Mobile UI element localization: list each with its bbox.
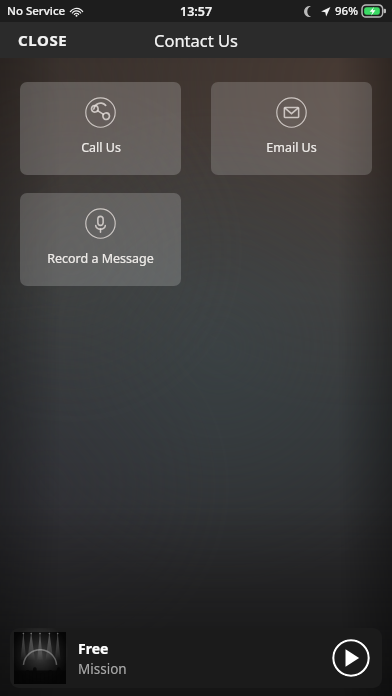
button[interactable]: Play [332,639,370,677]
button[interactable]: Email Us [211,82,372,175]
staticText: Free [78,639,109,658]
staticText: Mission [78,660,127,678]
staticText: Email Us [266,139,317,156]
staticText: No Service [7,3,66,19]
button[interactable]: Call Us [20,82,181,175]
button[interactable]: Free [10,628,382,688]
staticText: Record a Message [47,250,154,267]
staticText: Contact Us [154,29,238,51]
staticText: Call Us [81,139,121,156]
staticText: 96% [335,3,358,19]
button[interactable]: CLOSE [0,24,86,56]
staticText: 13:57 [180,3,213,20]
button[interactable]: Record a Message [20,193,181,286]
staticText: CLOSE [18,30,68,50]
